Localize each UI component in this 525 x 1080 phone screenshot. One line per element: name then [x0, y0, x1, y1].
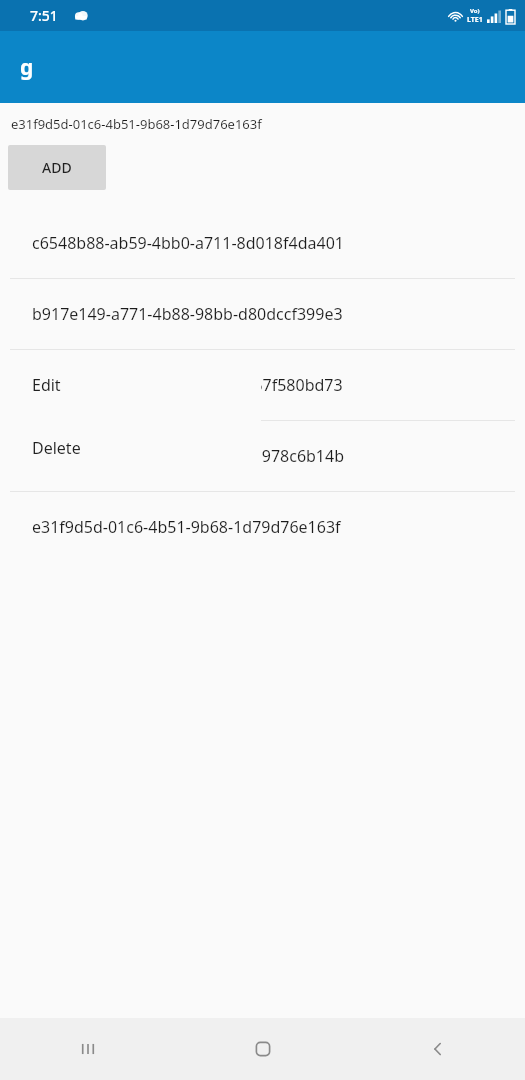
staticText: LTE1: [467, 15, 483, 25]
staticText: b917e149-a771-4b88-98bb-d80dccf399e3: [32, 303, 343, 325]
button[interactable]: Edit: [10, 353, 261, 416]
staticText: Delete: [32, 437, 81, 459]
button[interactable]: a0d2f4a1-77b2-46b3-98b3-b157f580bd73: [0, 350, 525, 420]
staticText: e31f9d5d-01c6-4b51-9b68-1d79d76e163f: [32, 516, 341, 538]
button[interactable]: Recent apps: [0, 1018, 175, 1080]
button[interactable]: 7c3e91b0-2d44-41a7-b11a-c06978c6b14b: [0, 421, 525, 491]
button[interactable]: g: [20, 53, 34, 82]
button[interactable]: ADD: [8, 145, 106, 190]
staticText: Edit: [32, 374, 61, 396]
staticText: Vo): [470, 7, 480, 15]
staticText: e31f9d5d-01c6-4b51-9b68-1d79d76e163f: [11, 115, 262, 133]
staticText: c6548b88-ab59-4bb0-a711-8d018f4da401: [32, 232, 344, 254]
staticText: a0d2f4a1-77b2-46b3-98b3-b157f580bd73: [32, 374, 343, 396]
staticText: ADD: [42, 158, 72, 177]
button[interactable]: b917e149-a771-4b88-98bb-d80dccf399e3: [0, 279, 525, 349]
button[interactable]: Home: [175, 1018, 350, 1080]
button[interactable]: Back: [350, 1018, 525, 1080]
button[interactable]: e31f9d5d-01c6-4b51-9b68-1d79d76e163f: [0, 492, 525, 562]
button[interactable]: Delete: [10, 416, 261, 479]
button[interactable]: c6548b88-ab59-4bb0-a711-8d018f4da401: [0, 208, 525, 278]
staticText: 7c3e91b0-2d44-41a7-b11a-c06978c6b14b: [32, 445, 345, 467]
staticText: 7:51: [30, 6, 58, 25]
